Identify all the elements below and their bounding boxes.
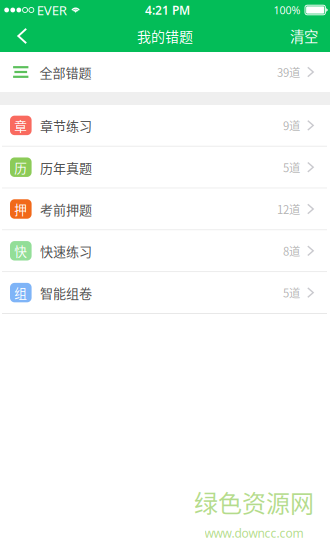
staticText: 清空 — [290, 26, 318, 46]
staticText: 5道 — [283, 159, 300, 175]
button[interactable]: 组 — [0, 272, 330, 313]
button[interactable]: 清空 — [279, 20, 329, 52]
button[interactable]: 返回 — [1, 20, 41, 52]
staticText: 5道 — [283, 284, 300, 301]
staticText: 我的错题 — [137, 26, 193, 46]
staticText: 章节练习 — [40, 116, 92, 135]
staticText: EVER — [37, 1, 67, 19]
staticText: 考前押题 — [40, 199, 92, 218]
staticText: 智能组卷 — [40, 283, 92, 302]
staticText: 4:21 PM — [145, 2, 190, 18]
staticText: 快 — [14, 242, 27, 260]
button[interactable]: 章 — [0, 105, 330, 146]
staticText: 组 — [14, 283, 27, 302]
button[interactable]: 押 — [0, 189, 330, 229]
staticText: 历年真题 — [40, 158, 92, 177]
staticText: 全部错题 — [39, 62, 91, 81]
staticText: 押 — [14, 200, 27, 218]
staticText: 章 — [14, 116, 27, 134]
staticText: 100% — [273, 3, 300, 17]
staticText: 9道 — [283, 117, 300, 134]
button[interactable]: 快 — [0, 230, 330, 271]
staticText: 8道 — [283, 243, 300, 259]
button[interactable]: 历 — [0, 147, 330, 188]
button[interactable]: 全部错题 — [0, 52, 330, 92]
staticText: 12道 — [277, 201, 300, 217]
staticText: www.downcc.com — [204, 525, 303, 541]
staticText: 绿色资源网 — [194, 484, 314, 519]
staticText: 39道 — [277, 64, 300, 80]
staticText: 快速练习 — [40, 241, 92, 260]
staticText: 历 — [14, 158, 27, 176]
